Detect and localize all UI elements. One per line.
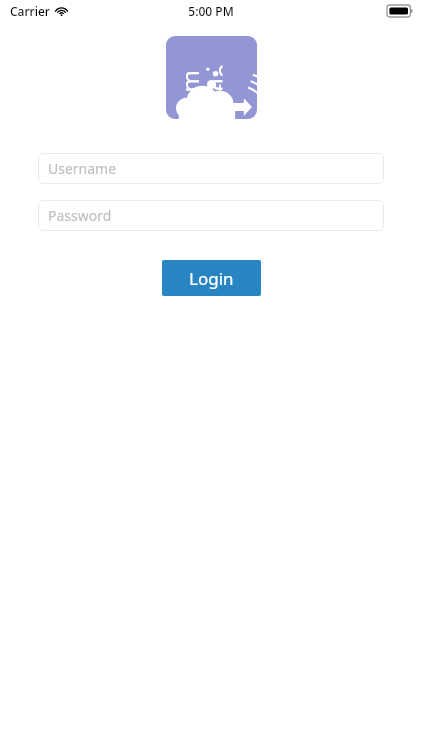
staticText: Login xyxy=(189,267,234,290)
staticText: Password xyxy=(48,206,112,225)
button[interactable]: Login xyxy=(162,260,261,296)
button[interactable]: Username xyxy=(38,153,384,184)
staticText: Username xyxy=(48,159,117,178)
other: temflo logo xyxy=(166,36,257,119)
staticText: temflo xyxy=(166,62,222,92)
staticText: 5:00 PM xyxy=(188,3,234,19)
button[interactable]: Password xyxy=(38,200,384,231)
staticText: Carrier xyxy=(10,3,50,19)
